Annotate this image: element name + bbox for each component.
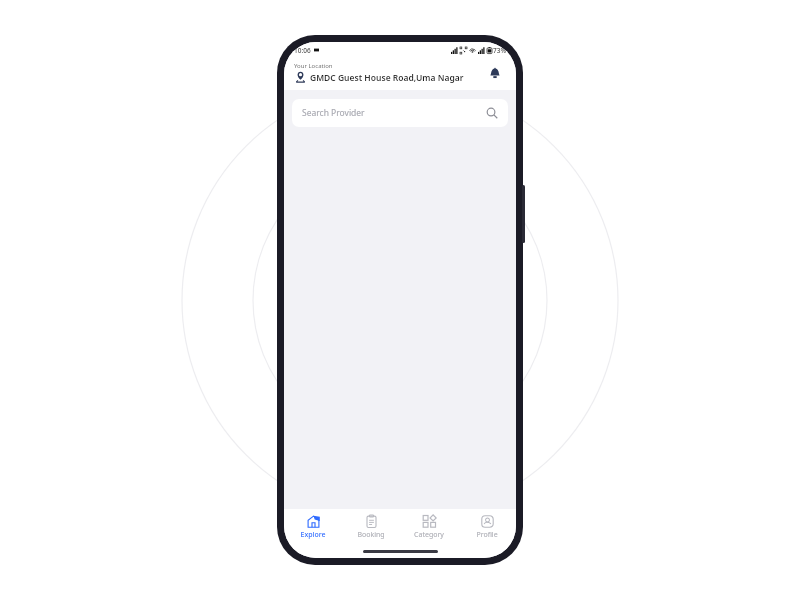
staticText: 10:06 xyxy=(294,46,311,55)
staticText: Booking xyxy=(357,530,385,540)
staticText: Category xyxy=(414,530,444,540)
button[interactable]: Explore xyxy=(284,509,342,545)
staticText: Search Provider xyxy=(302,107,486,119)
button[interactable]: Your Location xyxy=(294,62,484,84)
staticText: Your Location xyxy=(294,62,333,70)
staticText: Profile xyxy=(476,530,498,540)
button[interactable]: Search Provider xyxy=(292,99,508,127)
button[interactable]: Notifications xyxy=(484,62,506,84)
staticText: GMDC Guest House Road,Uma Nagar xyxy=(310,72,464,84)
button[interactable]: Profile xyxy=(458,509,516,545)
staticText: 73% xyxy=(493,46,506,55)
button[interactable]: Category xyxy=(400,509,458,545)
staticText: Explore xyxy=(300,530,326,540)
button[interactable]: Booking xyxy=(342,509,400,545)
